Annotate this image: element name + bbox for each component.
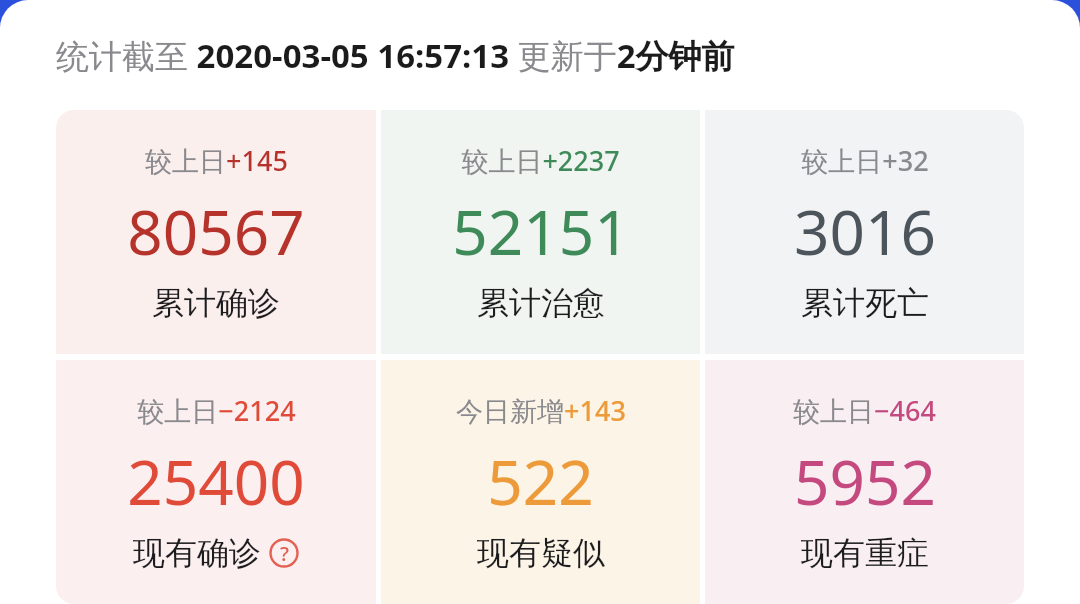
button[interactable]: 今日新增+143	[381, 360, 700, 604]
staticText: 较上日+32	[801, 142, 929, 179]
staticText: 较上日−2124	[137, 392, 296, 429]
staticText: 统计截至 2020-03-05 16:57:13 更新于2分钟前	[56, 33, 735, 78]
staticText: ?	[280, 540, 289, 567]
button[interactable]: 较上日−2124	[56, 360, 376, 604]
staticText: 累计治愈	[477, 283, 605, 323]
staticText: 3016	[794, 189, 936, 273]
staticText: 80567	[127, 189, 305, 273]
staticText: 较上日−464	[793, 392, 936, 429]
staticText: 较上日+145	[145, 142, 288, 179]
button[interactable]: 较上日−464	[705, 360, 1024, 604]
staticText: 较上日+2237	[461, 142, 620, 179]
staticText: 522	[487, 439, 594, 523]
staticText: 累计确诊	[152, 283, 280, 323]
staticText: 现有重症	[801, 533, 929, 573]
staticText: 5952	[794, 439, 936, 523]
staticText: 52151	[452, 189, 630, 273]
staticText: 现有疑似	[477, 533, 605, 573]
staticText: 今日新增+143	[456, 392, 626, 429]
staticText: 25400	[127, 439, 305, 523]
staticText: 现有确诊	[133, 533, 261, 573]
button[interactable]: 较上日+145	[56, 110, 376, 354]
staticText: 累计死亡	[801, 283, 929, 323]
button[interactable]: 较上日+2237	[381, 110, 700, 354]
button[interactable]: 较上日+32	[705, 110, 1024, 354]
button[interactable]: Help about current confirmed cases	[269, 538, 299, 568]
